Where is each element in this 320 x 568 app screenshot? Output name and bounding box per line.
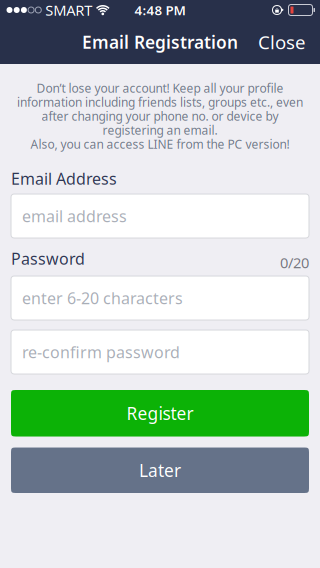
- staticText: re-confirm password: [22, 341, 180, 363]
- staticText: Password: [11, 248, 85, 269]
- staticText: registering an email.: [102, 122, 217, 138]
- button[interactable]: Register: [11, 390, 309, 436]
- staticText: enter 6-20 characters: [22, 287, 183, 309]
- staticText: email address: [22, 205, 127, 227]
- staticText: Don’t lose your account! Keep all your p…: [36, 80, 283, 96]
- staticText: Later: [139, 459, 181, 482]
- button[interactable]: email address: [11, 194, 309, 238]
- button[interactable]: Later: [11, 447, 309, 493]
- staticText: after changing your phone no. or device …: [41, 108, 278, 124]
- staticText: Email Address: [11, 168, 117, 189]
- staticText: SMART: [45, 0, 92, 20]
- staticText: 4:48 PM: [134, 1, 185, 19]
- staticText: Close: [258, 30, 306, 54]
- button[interactable]: enter 6-20 characters: [11, 276, 309, 320]
- button[interactable]: re-confirm password: [11, 330, 309, 374]
- staticText: 0/20: [280, 253, 309, 272]
- button[interactable]: Close: [244, 20, 320, 64]
- staticText: information including friends lists, gro…: [17, 94, 303, 110]
- staticText: Register: [126, 402, 193, 425]
- staticText: Email Registration: [82, 30, 238, 53]
- staticText: Also, you can access LINE from the PC ve…: [30, 136, 289, 152]
